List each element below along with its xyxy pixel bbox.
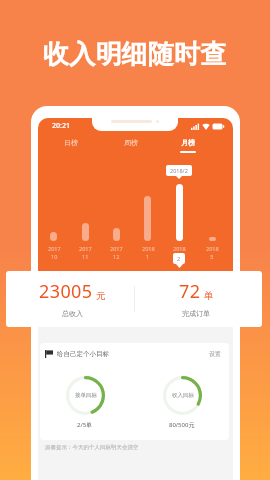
staticText: 单 [204, 290, 214, 302]
staticText: 温馨提示：今天的个人目标明天会清空 [45, 444, 139, 451]
staticText: 日榜 [64, 138, 78, 147]
staticText: 2018 [173, 245, 186, 252]
button[interactable] [113, 228, 120, 241]
staticText: 11 [82, 253, 89, 260]
staticText: 72 [179, 279, 201, 304]
staticText: 10 [51, 253, 58, 260]
staticText: 1 [146, 253, 150, 260]
button[interactable] [82, 223, 89, 241]
staticText: 2017 [79, 245, 92, 252]
staticText: 2017 [110, 245, 123, 252]
staticText: 总收入 [62, 309, 83, 318]
staticText: 3 [210, 253, 214, 260]
staticText: 给自己定个小目标 [57, 350, 109, 358]
staticText: 接单目标 [75, 392, 97, 399]
staticText: 周榜 [124, 138, 138, 147]
staticText: 80/500元 [169, 421, 195, 429]
staticText: 完成订单 [182, 309, 210, 318]
staticText: 设置 [209, 350, 221, 358]
staticText: 2018/2 [170, 167, 188, 174]
staticText: 2 [177, 255, 181, 262]
staticText: 月榜 [181, 138, 195, 147]
button[interactable]: 接单目标 [66, 376, 105, 415]
button[interactable] [176, 184, 183, 241]
staticText: 2018 [142, 245, 155, 252]
button[interactable]: 月榜 [172, 134, 204, 154]
staticText: 20:21 [52, 121, 70, 131]
staticText: 2017 [48, 245, 61, 252]
staticText: 12 [113, 253, 120, 260]
staticText: 元 [96, 290, 106, 302]
button[interactable]: 72 [146, 271, 246, 318]
button[interactable] [209, 237, 216, 241]
button[interactable]: 23005 [22, 271, 122, 318]
staticText: 23005 [39, 279, 93, 304]
button[interactable]: 周榜 [115, 134, 147, 154]
staticText: 收入明细随时查 [43, 38, 227, 71]
button[interactable]: 收入目标 [163, 376, 202, 415]
button[interactable]: 日榜 [55, 134, 87, 154]
button[interactable] [144, 196, 151, 241]
button[interactable] [50, 232, 57, 241]
staticText: 收入目标 [172, 392, 194, 399]
staticText: 2/5单 [77, 421, 93, 429]
staticText: 2018 [206, 245, 219, 252]
button[interactable]: 设置 [207, 348, 223, 360]
